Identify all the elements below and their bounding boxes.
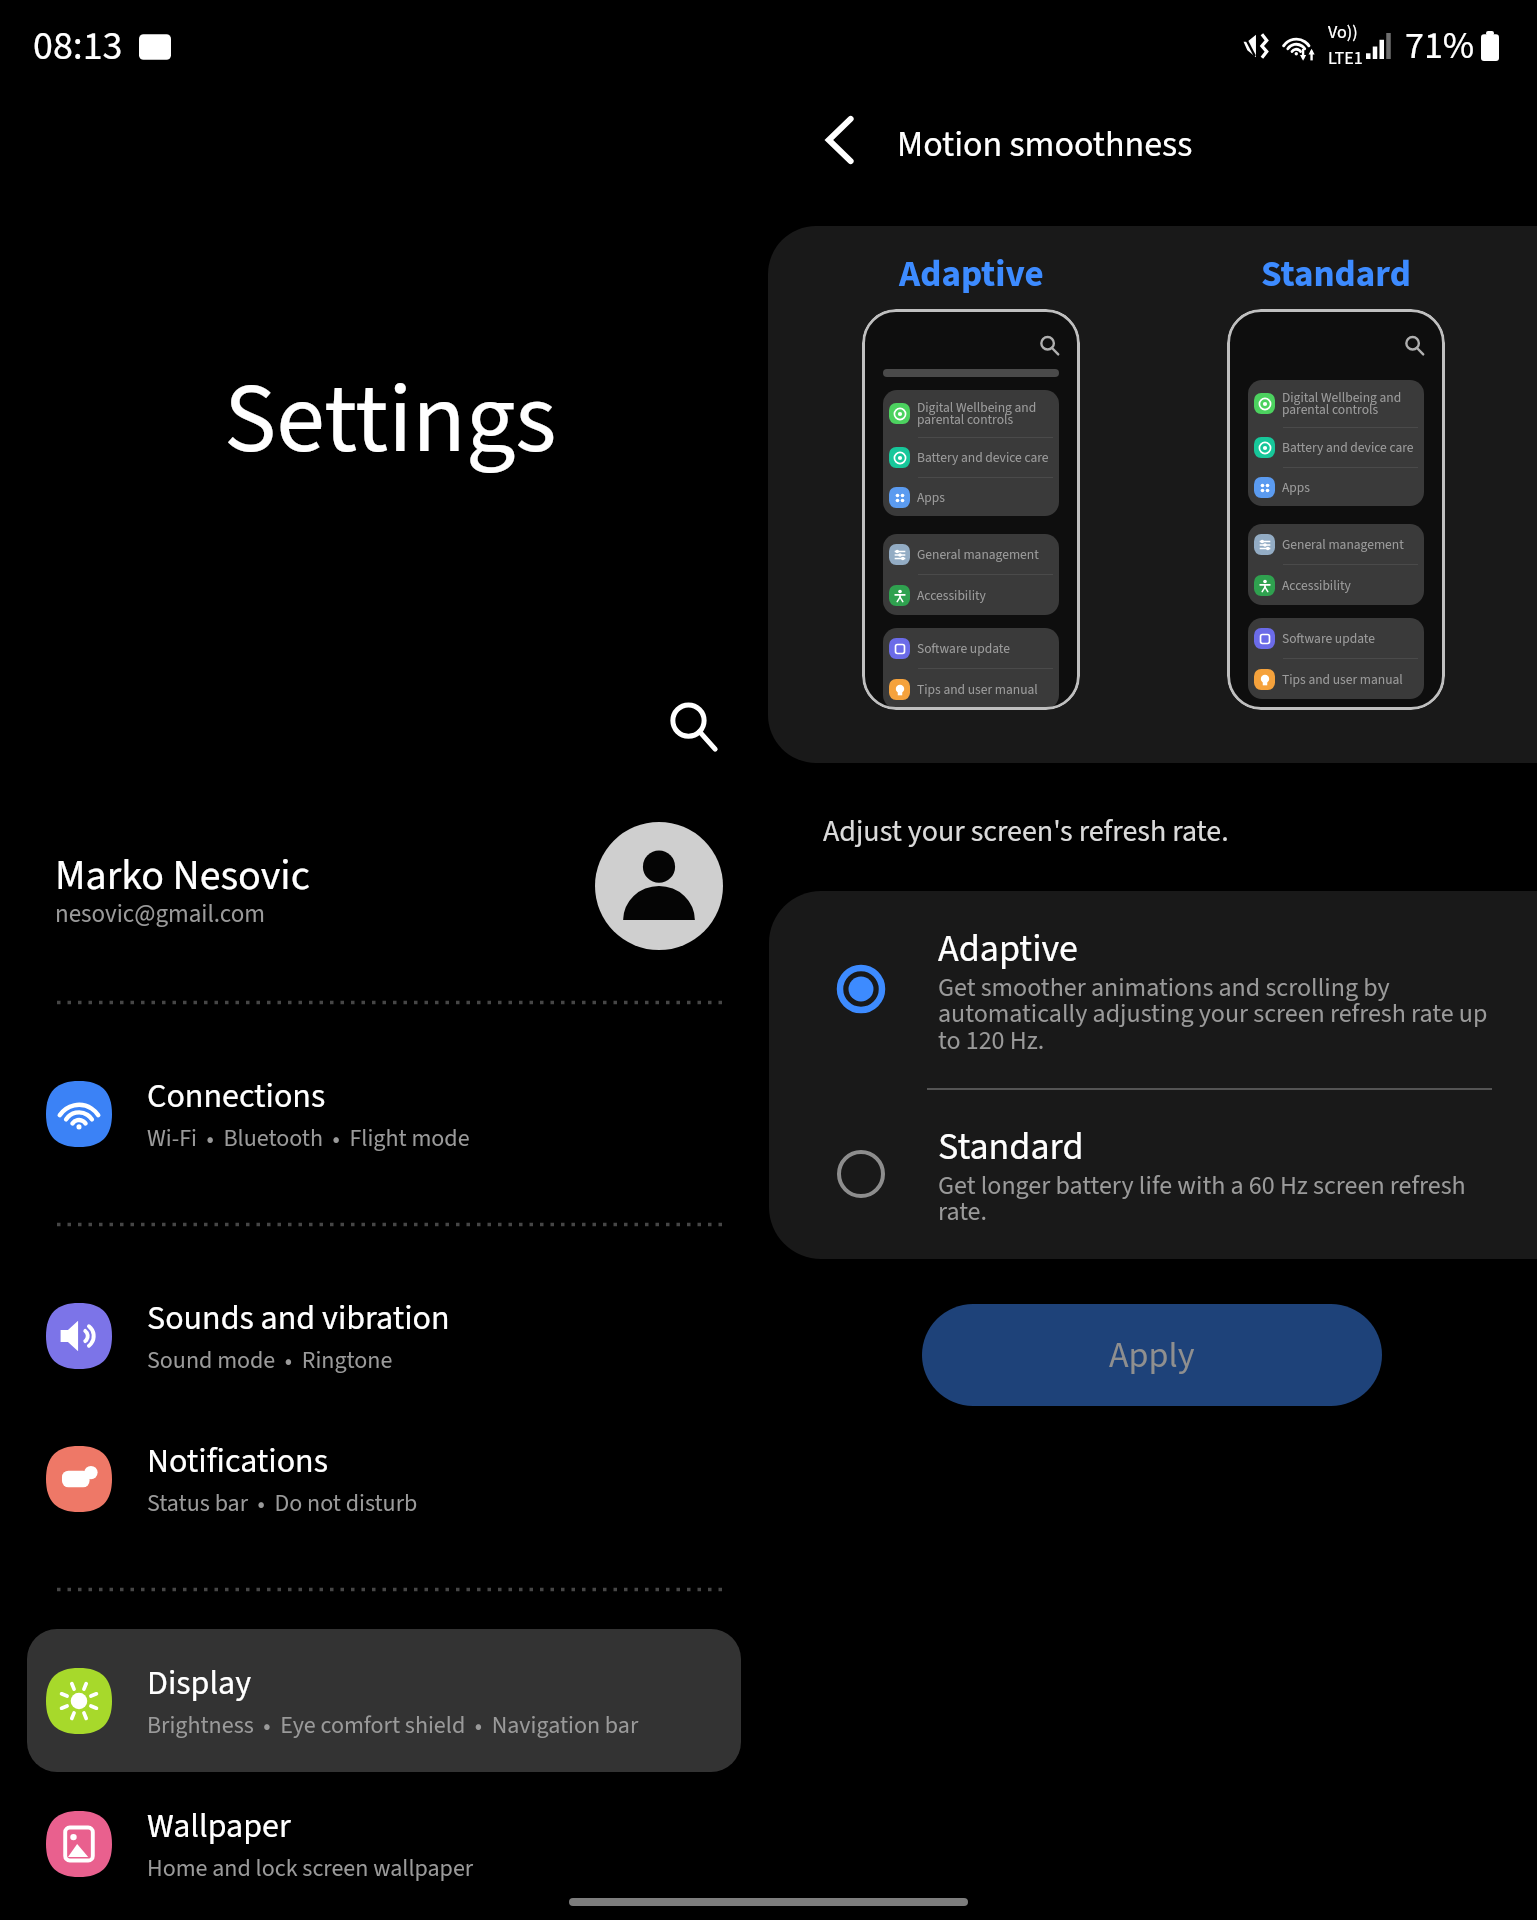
staticText: Adaptive — [938, 922, 1078, 976]
button[interactable]: Notifications — [27, 1407, 741, 1550]
staticText: General management — [1282, 535, 1404, 554]
staticText: LTE1 — [1328, 46, 1363, 72]
button[interactable]: Apply — [922, 1304, 1382, 1406]
staticText: Adjust your screen's refresh rate. — [823, 810, 1229, 853]
staticText: Adaptive — [899, 248, 1044, 301]
staticText: Marko Nesovic — [55, 846, 310, 906]
staticText: Sound mode • Ringtone — [147, 1343, 393, 1377]
button[interactable]: Connections — [27, 1042, 741, 1185]
staticText: Tips and user manual — [917, 680, 1038, 699]
button[interactable]: Adaptive preview — [862, 309, 1080, 710]
staticText: Digital Wellbeing and parental controls — [1282, 388, 1402, 420]
staticText: Accessibility — [917, 586, 986, 605]
staticText: Connections — [147, 1072, 326, 1120]
staticText: Tips and user manual — [1282, 670, 1403, 689]
staticText: Motion smoothness — [897, 119, 1193, 170]
staticText: Digital Wellbeing and parental controls — [917, 398, 1037, 430]
staticText: Settings — [224, 351, 557, 491]
staticText: Standard — [938, 1120, 1084, 1174]
button[interactable]: Marko Nesovic — [0, 800, 768, 975]
button[interactable]: Sounds and vibration — [27, 1264, 741, 1407]
button[interactable]: Display — [27, 1629, 741, 1772]
staticText: Sounds and vibration — [147, 1294, 450, 1342]
button[interactable]: Wallpaper — [27, 1772, 741, 1915]
button[interactable]: Back — [794, 94, 886, 186]
staticText: Notifications — [147, 1437, 328, 1485]
staticText: Battery and device care — [1282, 438, 1414, 457]
staticText: Accessibility — [1282, 576, 1351, 595]
staticText: Get longer battery life with a 60 Hz scr… — [938, 1167, 1504, 1231]
staticText: Status bar • Do not disturb — [147, 1486, 418, 1520]
staticText: Wi-Fi • Bluetooth • Flight mode — [147, 1121, 470, 1155]
staticText: Display — [147, 1659, 252, 1707]
staticText: Standard — [1261, 248, 1411, 301]
staticText: Brightness • Eye comfort shield • Naviga… — [147, 1708, 639, 1742]
staticText: Get smoother animations and scrolling by… — [938, 969, 1504, 1060]
staticText: General management — [917, 545, 1039, 564]
staticText: Apply — [1109, 1330, 1195, 1381]
staticText: Apps — [917, 488, 945, 507]
staticText: 71% — [1405, 19, 1475, 73]
button[interactable]: Adaptive refresh rate — [769, 891, 1537, 1088]
staticText: nesovic@gmail.com — [55, 896, 265, 932]
button[interactable]: Search — [639, 672, 749, 782]
staticText: Software update — [917, 639, 1010, 658]
button[interactable]: Standard refresh rate — [769, 1090, 1537, 1259]
staticText: Software update — [1282, 629, 1375, 648]
button[interactable]: Standard preview — [1227, 309, 1445, 710]
staticText: Home and lock screen wallpaper — [147, 1851, 474, 1885]
staticText: 08:13 — [33, 18, 123, 75]
staticText: Battery and device care — [917, 448, 1049, 467]
staticText: Wallpaper — [147, 1802, 291, 1850]
staticText: Vo)) — [1328, 20, 1358, 46]
staticText: Apps — [1282, 478, 1310, 497]
